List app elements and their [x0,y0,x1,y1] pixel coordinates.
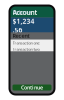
staticText: Balance [12,9,31,16]
button[interactable]: Continue [12,84,51,90]
staticText: Recent [12,32,29,39]
staticText: Account [12,8,37,17]
staticText: Transaction one [12,40,39,45]
staticText: Transaction two [12,46,39,52]
staticText: Continue [21,84,43,91]
staticText: $1,234.56 [12,17,34,34]
